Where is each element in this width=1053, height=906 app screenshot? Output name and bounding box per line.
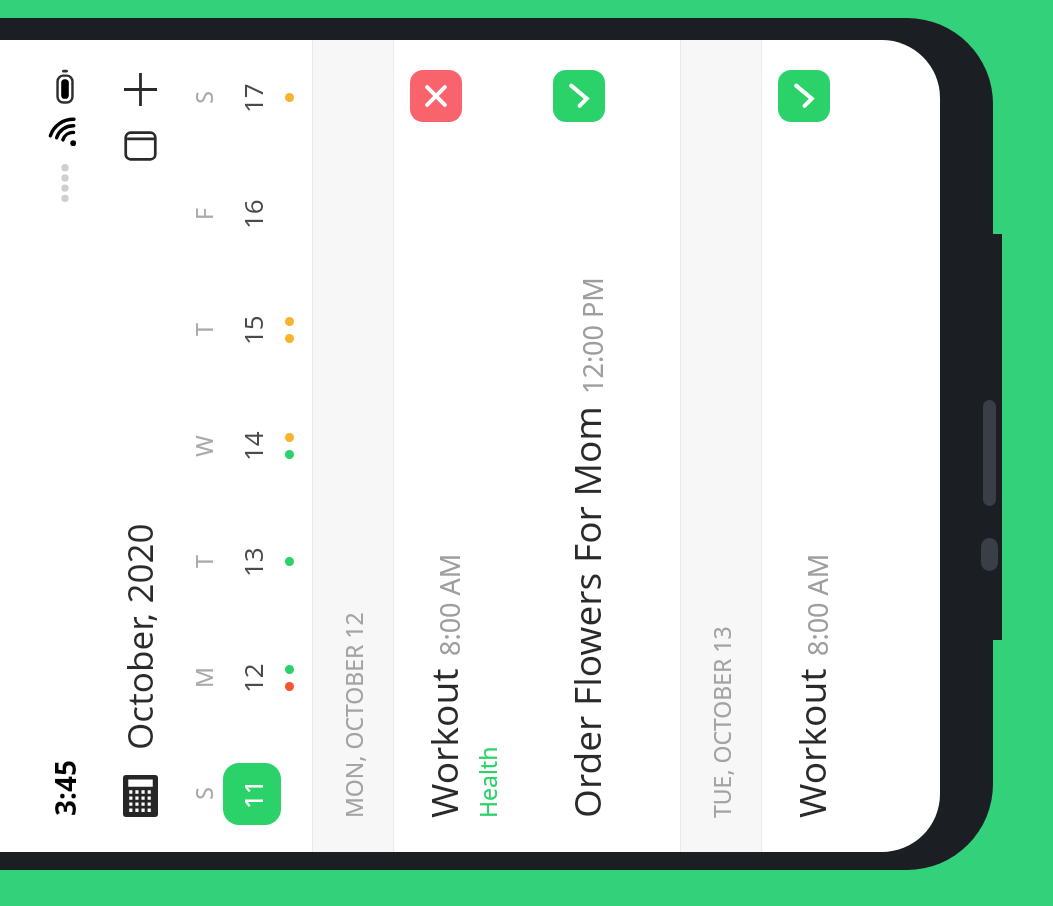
staticText: 14 — [235, 431, 270, 461]
button[interactable]: Mark incomplete — [553, 70, 605, 122]
staticText: 13 — [235, 547, 270, 577]
staticText: TUE, OCTOBER 13 — [706, 626, 737, 818]
staticText: Workout — [786, 668, 836, 818]
staticText: 8:00 AM — [431, 553, 468, 656]
button[interactable]: S — [184, 40, 312, 156]
staticText: T — [188, 555, 219, 568]
staticText: 12 — [235, 663, 270, 693]
staticText: Workout — [418, 668, 468, 818]
staticText: 3:45 — [46, 760, 84, 816]
button[interactable]: Month view — [116, 772, 164, 820]
button[interactable]: F — [184, 156, 312, 272]
button[interactable]: Workout — [762, 40, 846, 852]
staticText: W — [188, 435, 219, 457]
staticText: 11 — [235, 779, 270, 809]
staticText: 12:00 PM — [574, 277, 611, 394]
staticText: 16 — [235, 199, 270, 229]
button[interactable]: Add event — [116, 66, 164, 114]
staticText: October, 2020 — [116, 523, 164, 750]
staticText: 8:00 AM — [799, 553, 836, 656]
button[interactable]: S — [184, 736, 312, 852]
button[interactable]: T — [184, 272, 312, 388]
staticText: F — [188, 208, 219, 220]
button[interactable]: Workout — [394, 40, 537, 852]
staticText: Health — [472, 746, 503, 818]
staticText: S — [188, 91, 219, 104]
staticText: 15 — [235, 315, 270, 345]
staticText: S — [188, 787, 219, 800]
staticText: M — [188, 667, 219, 688]
staticText: MON, OCTOBER 12 — [338, 612, 369, 818]
button[interactable]: Mark complete — [410, 70, 462, 122]
button[interactable]: Agenda view — [116, 122, 164, 170]
button[interactable]: T — [184, 504, 312, 620]
staticText: 17 — [235, 83, 270, 113]
button[interactable]: W — [184, 388, 312, 504]
button[interactable]: Order Flowers For Mom — [537, 40, 680, 852]
button[interactable]: M — [184, 620, 312, 736]
button[interactable]: Mark incomplete — [778, 70, 830, 122]
staticText: T — [188, 323, 219, 336]
staticText: Order Flowers For Mom — [561, 406, 611, 818]
